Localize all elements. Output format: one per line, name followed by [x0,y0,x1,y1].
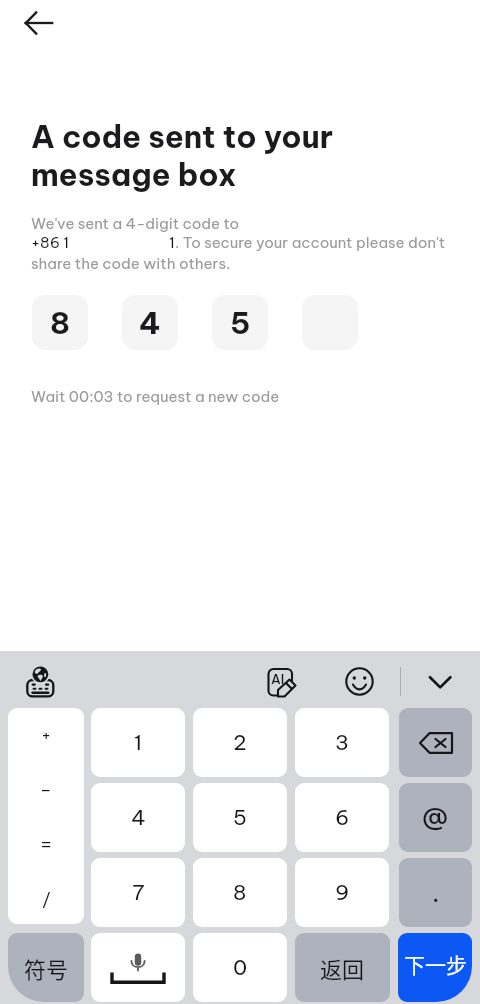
staticText: + [41,724,52,746]
button[interactable]: 下一步 [398,933,472,1002]
button[interactable]: Switch input language [20,659,60,699]
button[interactable]: Back [11,0,67,51]
button[interactable]: At sign [399,783,472,852]
staticText: A code sent to your message box [31,117,334,194]
staticText: 3 [335,729,349,756]
button[interactable]: 6 [295,783,389,852]
staticText: 2 [233,729,247,756]
button[interactable]: Voice input and space [91,933,185,1002]
button[interactable]: Digit 3 [212,295,268,350]
staticText: We've sent a 4-digit code to [31,214,240,233]
staticText: 1 [134,729,143,756]
staticText: 符号 [24,952,69,984]
staticText: 0 [233,954,248,981]
button[interactable]: 7 [91,858,185,927]
button[interactable]: 返回 [295,933,390,1002]
staticText: 8 [50,304,71,342]
staticText: 6 [335,804,350,831]
staticText: 9 [335,879,350,906]
staticText: = [40,833,53,855]
staticText: share the code with others. [31,254,231,273]
button[interactable]: Digit 1 [32,295,88,350]
staticText: 4 [139,304,161,342]
button[interactable]: Period [399,858,472,927]
staticText: 返回 [320,952,365,984]
button[interactable]: 符号 [8,933,84,1002]
staticText: 5 [233,804,247,831]
staticText: . To secure your account please don't [175,233,446,252]
button[interactable]: Backspace [399,708,472,777]
button[interactable]: 9 [295,858,389,927]
staticText: @ [422,801,449,834]
button[interactable]: Emoji [342,662,378,698]
staticText: 4 [131,804,146,831]
staticText: 5 [230,304,251,342]
staticText: . [432,876,440,909]
button[interactable]: 8 [193,858,287,927]
button[interactable]: 4 [91,783,185,852]
button[interactable]: 1 [91,708,185,777]
button[interactable]: 2 [193,708,287,777]
button[interactable]: AI writing [260,659,296,695]
button[interactable]: Hide keyboard [420,661,460,701]
staticText: +86 1 [31,233,70,252]
staticText: AI [271,671,285,687]
button[interactable]: 3 [295,708,389,777]
staticText: 8 [233,879,247,906]
staticText: 下一步 [404,949,467,979]
button[interactable]: 5 [193,783,287,852]
staticText: 1 [169,233,175,252]
staticText: Wait 00:03 to request a new code [31,387,280,406]
button[interactable]: Digit 2 [122,295,178,350]
staticText: – [40,779,52,801]
staticText: / [42,888,51,910]
staticText: 7 [132,879,145,906]
button[interactable]: 0 [193,933,287,1002]
button[interactable]: Symbols [8,708,84,924]
